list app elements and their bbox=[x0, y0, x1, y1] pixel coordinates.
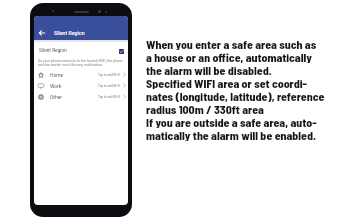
staticText: matically the alarm will be enabled. bbox=[146, 128, 317, 141]
staticText: Silent Region bbox=[39, 48, 67, 54]
staticText: a house or an office, automatically bbox=[146, 50, 312, 63]
button[interactable]: Other bbox=[34, 91, 128, 102]
staticText: Tap to add Wi-Fi bbox=[98, 95, 121, 99]
staticText: Tap to add Wi-Fi bbox=[98, 84, 121, 88]
staticText: Tap to add Wi-Fi bbox=[98, 73, 121, 77]
button[interactable]: Back bbox=[37, 28, 46, 37]
button[interactable]: Home bbox=[34, 69, 128, 80]
staticText: Home bbox=[50, 72, 64, 78]
staticText: When you enter a safe area such as bbox=[146, 37, 317, 50]
staticText: Specified WIFI area or set coordi- bbox=[146, 76, 308, 89]
button[interactable]: Work bbox=[34, 80, 128, 91]
staticText: Silent Region bbox=[54, 30, 85, 36]
staticText: As your phone connects to the trusted Wi… bbox=[38, 59, 123, 67]
staticText: If you are outside a safe area, auto- bbox=[146, 115, 317, 128]
button[interactable]: Silent region enabled bbox=[119, 49, 124, 54]
staticText: nates (longitude, latitude), reference bbox=[146, 89, 325, 102]
staticText: the alarm will be disabled. bbox=[146, 63, 272, 76]
staticText: Work bbox=[50, 83, 62, 89]
staticText: radius 100m / 330ft area bbox=[146, 102, 264, 115]
staticText: Other bbox=[50, 94, 62, 100]
